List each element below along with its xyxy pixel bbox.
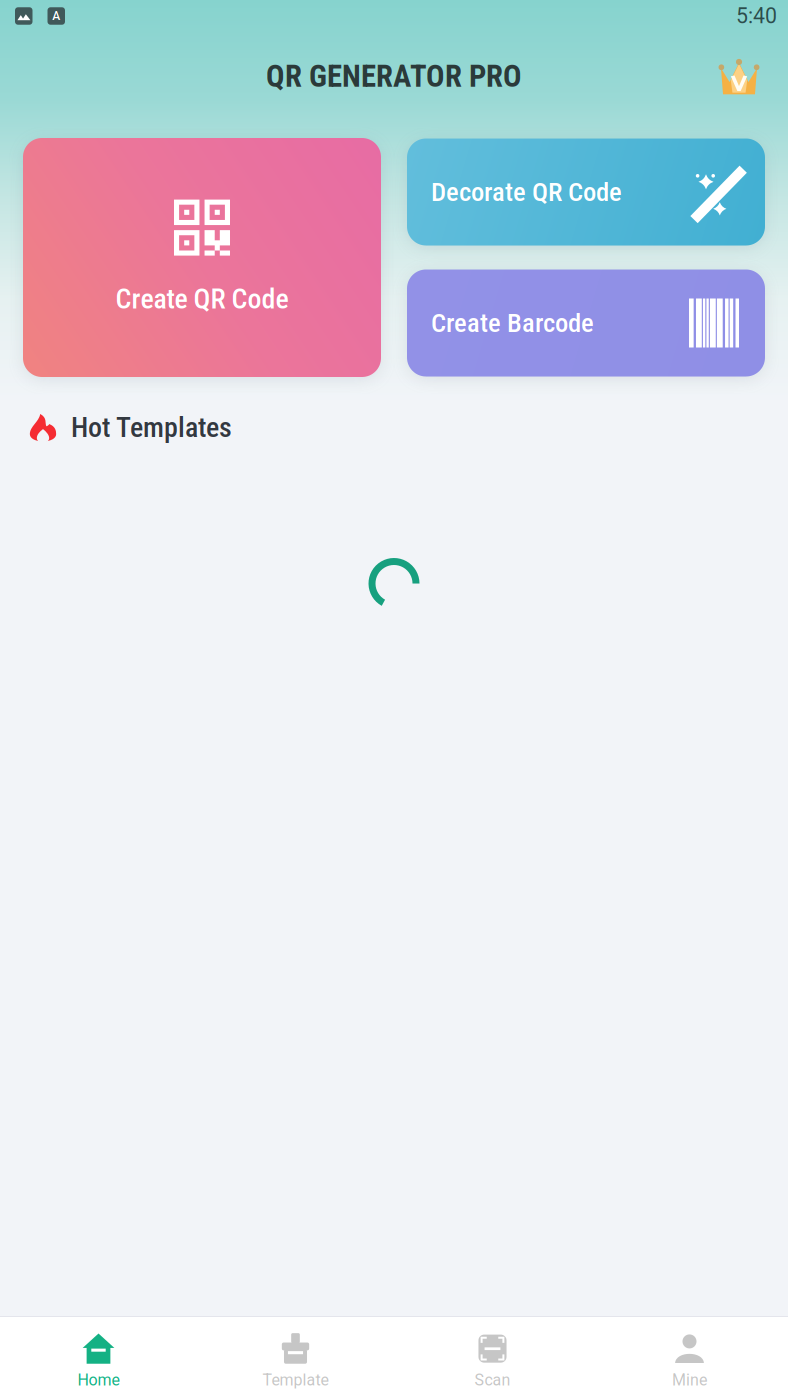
staticText: Mine (672, 1371, 707, 1389)
button[interactable]: Mine (591, 1317, 788, 1399)
button[interactable]: Scan (394, 1317, 591, 1399)
staticText: Home (77, 1371, 119, 1389)
staticText: Create QR Code (115, 283, 288, 315)
staticText: 5:40 (736, 3, 777, 28)
button[interactable]: VIP (712, 58, 766, 112)
button[interactable]: Home (0, 1317, 197, 1399)
staticText: A (52, 9, 60, 23)
button[interactable]: Create Barcode (407, 269, 765, 376)
staticText: Decorate QR Code (431, 176, 622, 208)
button[interactable]: Decorate QR Code (407, 138, 765, 245)
staticText: Template (262, 1371, 328, 1389)
button[interactable]: Template (197, 1317, 394, 1399)
staticText: Scan (474, 1371, 510, 1389)
button[interactable]: Create QR Code (23, 138, 381, 377)
staticText: QR GENERATOR PRO (266, 58, 522, 94)
staticText: Create Barcode (431, 307, 594, 339)
staticText: Hot Templates (71, 411, 232, 444)
